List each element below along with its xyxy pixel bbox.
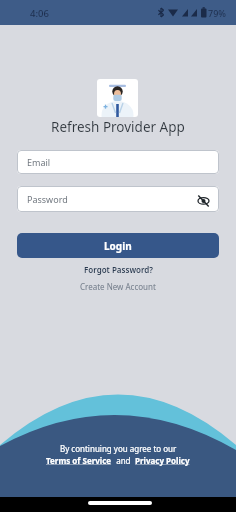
staticText: Refresh Provider App (51, 118, 185, 136)
button[interactable]: Password (17, 186, 219, 212)
staticText: Privacy Policy (135, 455, 190, 466)
staticText: Password (27, 193, 68, 205)
staticText: Email (27, 156, 51, 168)
button[interactable]: Email (17, 150, 219, 174)
staticText: and (112, 455, 135, 466)
button[interactable]: Create New Account (80, 281, 156, 292)
staticText: Terms of Service (46, 455, 112, 466)
staticText: Forgot Password? (84, 264, 153, 275)
button[interactable]: Login (17, 233, 219, 258)
staticText: Login (104, 239, 132, 253)
button[interactable]: Forgot Password? (84, 264, 153, 275)
staticText: 79% (208, 7, 226, 19)
button[interactable]: Privacy Policy (135, 455, 190, 466)
button[interactable]: Terms of Service (46, 455, 112, 466)
staticText: 4:06 (30, 7, 49, 20)
staticText: Create New Account (80, 281, 156, 292)
staticText: By continuing you agree to our (60, 443, 177, 454)
